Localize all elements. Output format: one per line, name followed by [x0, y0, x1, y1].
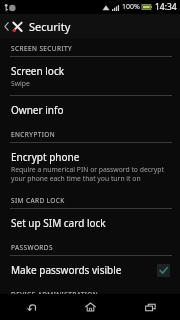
button[interactable]: Make passwords visible [0, 256, 180, 284]
staticText: Owner info [11, 103, 64, 117]
staticText: Set up SIM card lock [11, 216, 106, 230]
staticText: 14:34 [155, 1, 177, 13]
staticText: PASSWORDS [11, 243, 53, 252]
staticText: Make passwords visible [11, 263, 122, 277]
button[interactable]: Owner info [0, 96, 180, 124]
staticText: SCREEN SECURITY [11, 44, 73, 53]
staticText: 100% [122, 2, 140, 12]
staticText: DEVICE ADMINISTRATION [11, 290, 99, 294]
button[interactable]: Screen lock [0, 57, 180, 95]
staticText: Swipe [11, 79, 30, 88]
button[interactable]: Recent apps [120, 294, 180, 320]
staticText: Encrypt phone [11, 150, 80, 164]
button[interactable]: Encrypt phone [0, 143, 180, 190]
button[interactable]: Navigate up [0, 16, 26, 37]
button[interactable]: Back [0, 294, 60, 320]
staticText: Security [29, 19, 71, 34]
staticText: SIM CARD LOCK [11, 196, 65, 205]
button[interactable]: Set up SIM card lock [0, 209, 180, 237]
staticText: ENCRYPTION [11, 130, 56, 139]
staticText: Require a numerical PIN or password to d… [11, 165, 170, 183]
staticText: Screen lock [11, 64, 65, 78]
button[interactable]: Home [60, 294, 120, 320]
